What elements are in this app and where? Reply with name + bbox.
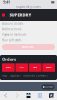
staticText: RETURNS xyxy=(23,74,34,77)
staticText: Account details xyxy=(2,22,23,25)
button[interactable]: Payment methods xyxy=(0,32,57,37)
staticText: Your gift cards xyxy=(2,38,21,42)
staticText: 9:41 xyxy=(3,0,10,5)
button[interactable]: SALE xyxy=(15,63,28,72)
staticText: SALE xyxy=(20,67,24,68)
staticText: WOMENS xyxy=(46,67,52,68)
button[interactable]: SIGN OUT xyxy=(2,44,55,50)
staticText: ▮▮▮ xyxy=(51,0,54,3)
staticText: SIGN OUT xyxy=(22,45,35,49)
staticText: superdry.com xyxy=(16,4,41,9)
button[interactable]: Account details xyxy=(0,21,57,26)
staticText: MENS xyxy=(33,67,37,68)
button[interactable]: Address book xyxy=(0,26,57,32)
button[interactable]: Customer service xyxy=(41,84,54,89)
button[interactable]: Your gift cards xyxy=(0,37,57,43)
button[interactable]: NEW IN xyxy=(2,63,15,72)
button[interactable]: Tabs xyxy=(46,91,57,100)
staticText: HELP xyxy=(2,74,8,77)
staticText: DELIVERY xyxy=(10,74,22,77)
staticText: CUSTOMER xyxy=(45,86,53,88)
staticText: Payment methods xyxy=(2,33,26,36)
staticText: Address book xyxy=(2,27,21,31)
staticText: Orders xyxy=(2,56,16,62)
button[interactable]: Share xyxy=(23,91,34,100)
button[interactable]: MENS xyxy=(29,63,42,72)
button[interactable]: Bookmarks xyxy=(34,91,46,100)
staticText: NEW IN xyxy=(6,67,11,68)
staticText: CONTACT xyxy=(36,74,48,77)
button[interactable]: Forward xyxy=(11,91,23,100)
staticText: SUPERDRY xyxy=(9,12,31,18)
button[interactable]: Back xyxy=(0,91,11,100)
button[interactable]: WOMENS xyxy=(42,63,55,72)
